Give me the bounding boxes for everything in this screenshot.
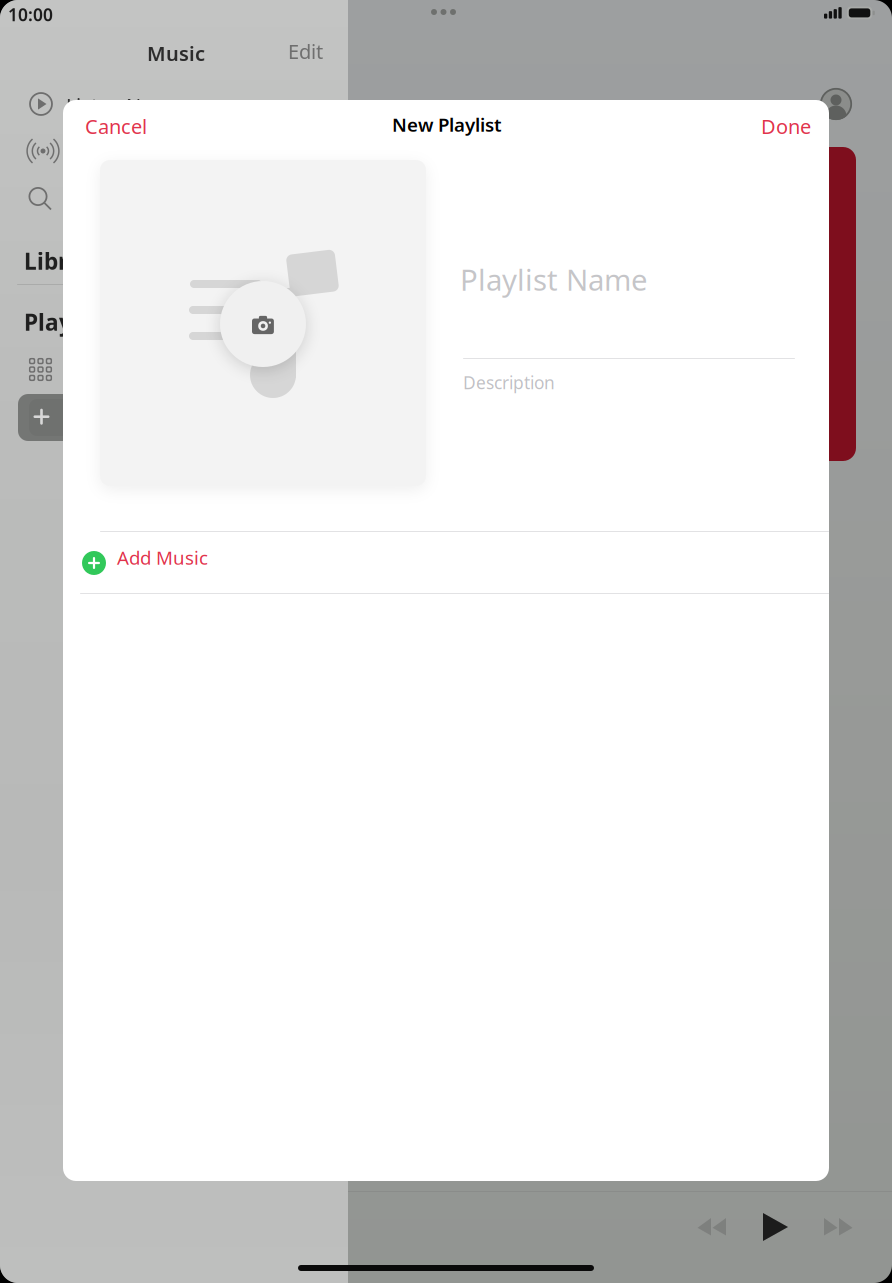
button[interactable]: Add Music [80, 532, 829, 594]
staticText: Description [463, 371, 555, 394]
button[interactable]: Previous track [687, 1209, 737, 1245]
button[interactable]: Choose artwork [100, 160, 426, 486]
staticText: Listen Now [66, 92, 169, 119]
staticText: New Playlist [392, 112, 502, 137]
staticText: 10:00 [8, 3, 53, 26]
staticText: Search [66, 189, 129, 216]
staticText: Add Music [117, 545, 208, 570]
staticText: Radio [66, 140, 118, 167]
staticText: Edit [288, 38, 323, 65]
button[interactable]: Play [754, 1204, 797, 1250]
staticText: Done [761, 113, 811, 140]
button[interactable]: Done [752, 104, 820, 149]
button[interactable]: Cancel [76, 104, 156, 149]
staticText: Playlist Name [460, 260, 648, 299]
button[interactable]: Next track [815, 1209, 865, 1245]
staticText: Music [147, 40, 205, 67]
staticText: Playlists [24, 307, 118, 337]
staticText: Cancel [85, 113, 147, 140]
staticText: Library [24, 246, 105, 276]
